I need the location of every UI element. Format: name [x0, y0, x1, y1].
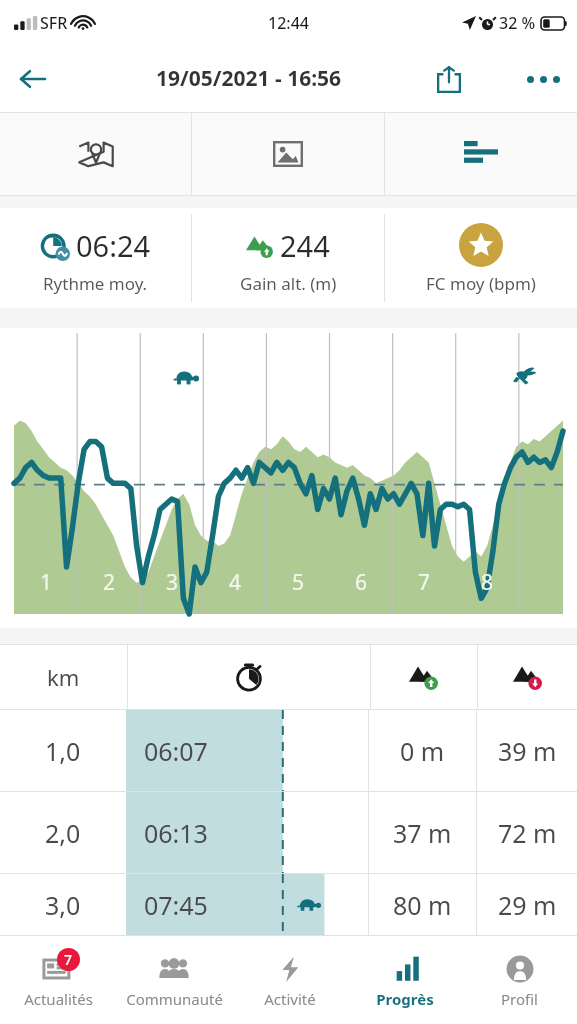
- button[interactable]: Map: [0, 113, 191, 195]
- staticText: 80 m: [393, 888, 452, 922]
- button[interactable]: Activité: [232, 936, 347, 1024]
- button[interactable]: Share: [425, 55, 473, 103]
- staticText: 8: [481, 568, 494, 597]
- staticText: 37 m: [393, 816, 452, 850]
- staticText: 29 m: [498, 888, 557, 922]
- staticText: 06:07: [144, 734, 208, 768]
- button[interactable]: Stats: [385, 113, 577, 195]
- staticText: Actualités: [24, 989, 93, 1009]
- staticText: 1: [40, 568, 53, 597]
- staticText: 39 m: [498, 734, 557, 768]
- staticText: SFR: [40, 12, 68, 34]
- staticText: 0 m: [400, 734, 445, 768]
- staticText: Profil: [501, 989, 538, 1009]
- staticText: 1,0: [45, 734, 81, 768]
- button[interactable]: 244: [192, 208, 384, 308]
- button[interactable]: Progrès: [347, 936, 462, 1024]
- staticText: 244: [280, 226, 330, 265]
- staticText: 2,0: [45, 816, 81, 850]
- staticText: 4: [229, 568, 242, 597]
- staticText: Progrès: [376, 989, 434, 1009]
- staticText: 72 m: [498, 816, 557, 850]
- staticText: 06:24: [76, 226, 151, 265]
- button[interactable]: 06:24: [0, 208, 191, 308]
- staticText: 12:44: [268, 12, 309, 34]
- staticText: 5: [292, 568, 305, 597]
- button[interactable]: 2,0: [0, 792, 577, 873]
- button[interactable]: More options: [519, 55, 567, 103]
- button[interactable]: Photos: [192, 113, 384, 195]
- staticText: 2: [103, 568, 116, 597]
- button[interactable]: 1,0: [0, 710, 577, 791]
- button[interactable]: Communauté: [116, 936, 232, 1024]
- button[interactable]: FC moy (bpm): [385, 208, 577, 308]
- staticText: 7: [418, 568, 431, 597]
- button[interactable]: 7: [0, 936, 116, 1024]
- staticText: Gain alt. (m): [240, 272, 337, 295]
- staticText: 3: [166, 568, 179, 597]
- staticText: Communauté: [126, 989, 223, 1009]
- staticText: 19/05/2021 - 16:56: [156, 64, 342, 93]
- staticText: FC moy (bpm): [426, 272, 536, 295]
- staticText: 07:45: [144, 888, 208, 922]
- staticText: Rythme moy.: [43, 272, 148, 295]
- button[interactable]: Profil: [462, 936, 577, 1024]
- staticText: 32 %: [499, 12, 536, 34]
- staticText: 06:13: [144, 816, 208, 850]
- button[interactable]: Back: [8, 55, 56, 103]
- staticText: 3,0: [45, 888, 81, 922]
- button[interactable]: 3,0: [0, 874, 577, 935]
- staticText: 6: [355, 568, 368, 597]
- staticText: Activité: [264, 989, 316, 1009]
- staticText: km: [47, 662, 80, 692]
- staticText: 7: [64, 950, 73, 969]
